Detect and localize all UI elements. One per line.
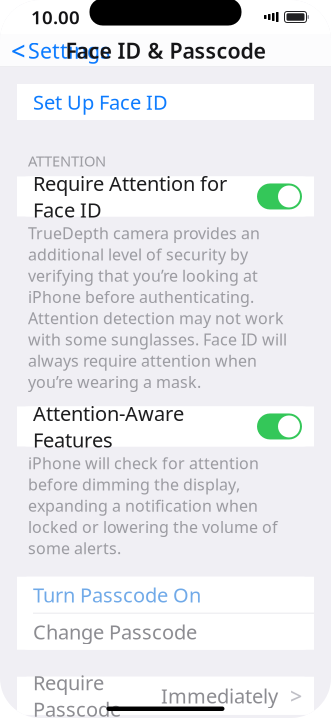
staticText: > [290,681,302,710]
staticText: Immediately [161,682,278,709]
staticText: iPhone will check for attention before d… [28,452,278,559]
staticText: 10.00 [31,5,80,29]
button[interactable]: Turn Passcode On [17,577,314,613]
staticText: Face ID & Passcode [65,36,265,65]
staticText: Change Passcode [33,618,197,645]
staticText: Attention-Aware Features [33,400,184,453]
staticText: < [11,34,25,67]
staticText: Set Up Face ID [33,89,168,115]
staticText [278,2,284,32]
staticText: Require Passcode [33,669,121,718]
staticText: TrueDepth camera provides an additional … [28,222,287,392]
button[interactable]: Set Up Face ID [17,84,314,120]
button[interactable]: Attention-Aware Features [17,406,314,446]
staticText: Turn Passcode On [33,581,201,608]
staticText: Require Attention for Face ID [33,170,227,223]
staticText: Settings [28,36,110,65]
staticText: ATTENTION [28,151,106,170]
button[interactable]: Change Passcode [17,614,314,650]
button[interactable]: Require Passcode [17,677,314,715]
button[interactable]: < [0,28,110,73]
button[interactable]: Require Attention for Face ID [17,176,314,216]
